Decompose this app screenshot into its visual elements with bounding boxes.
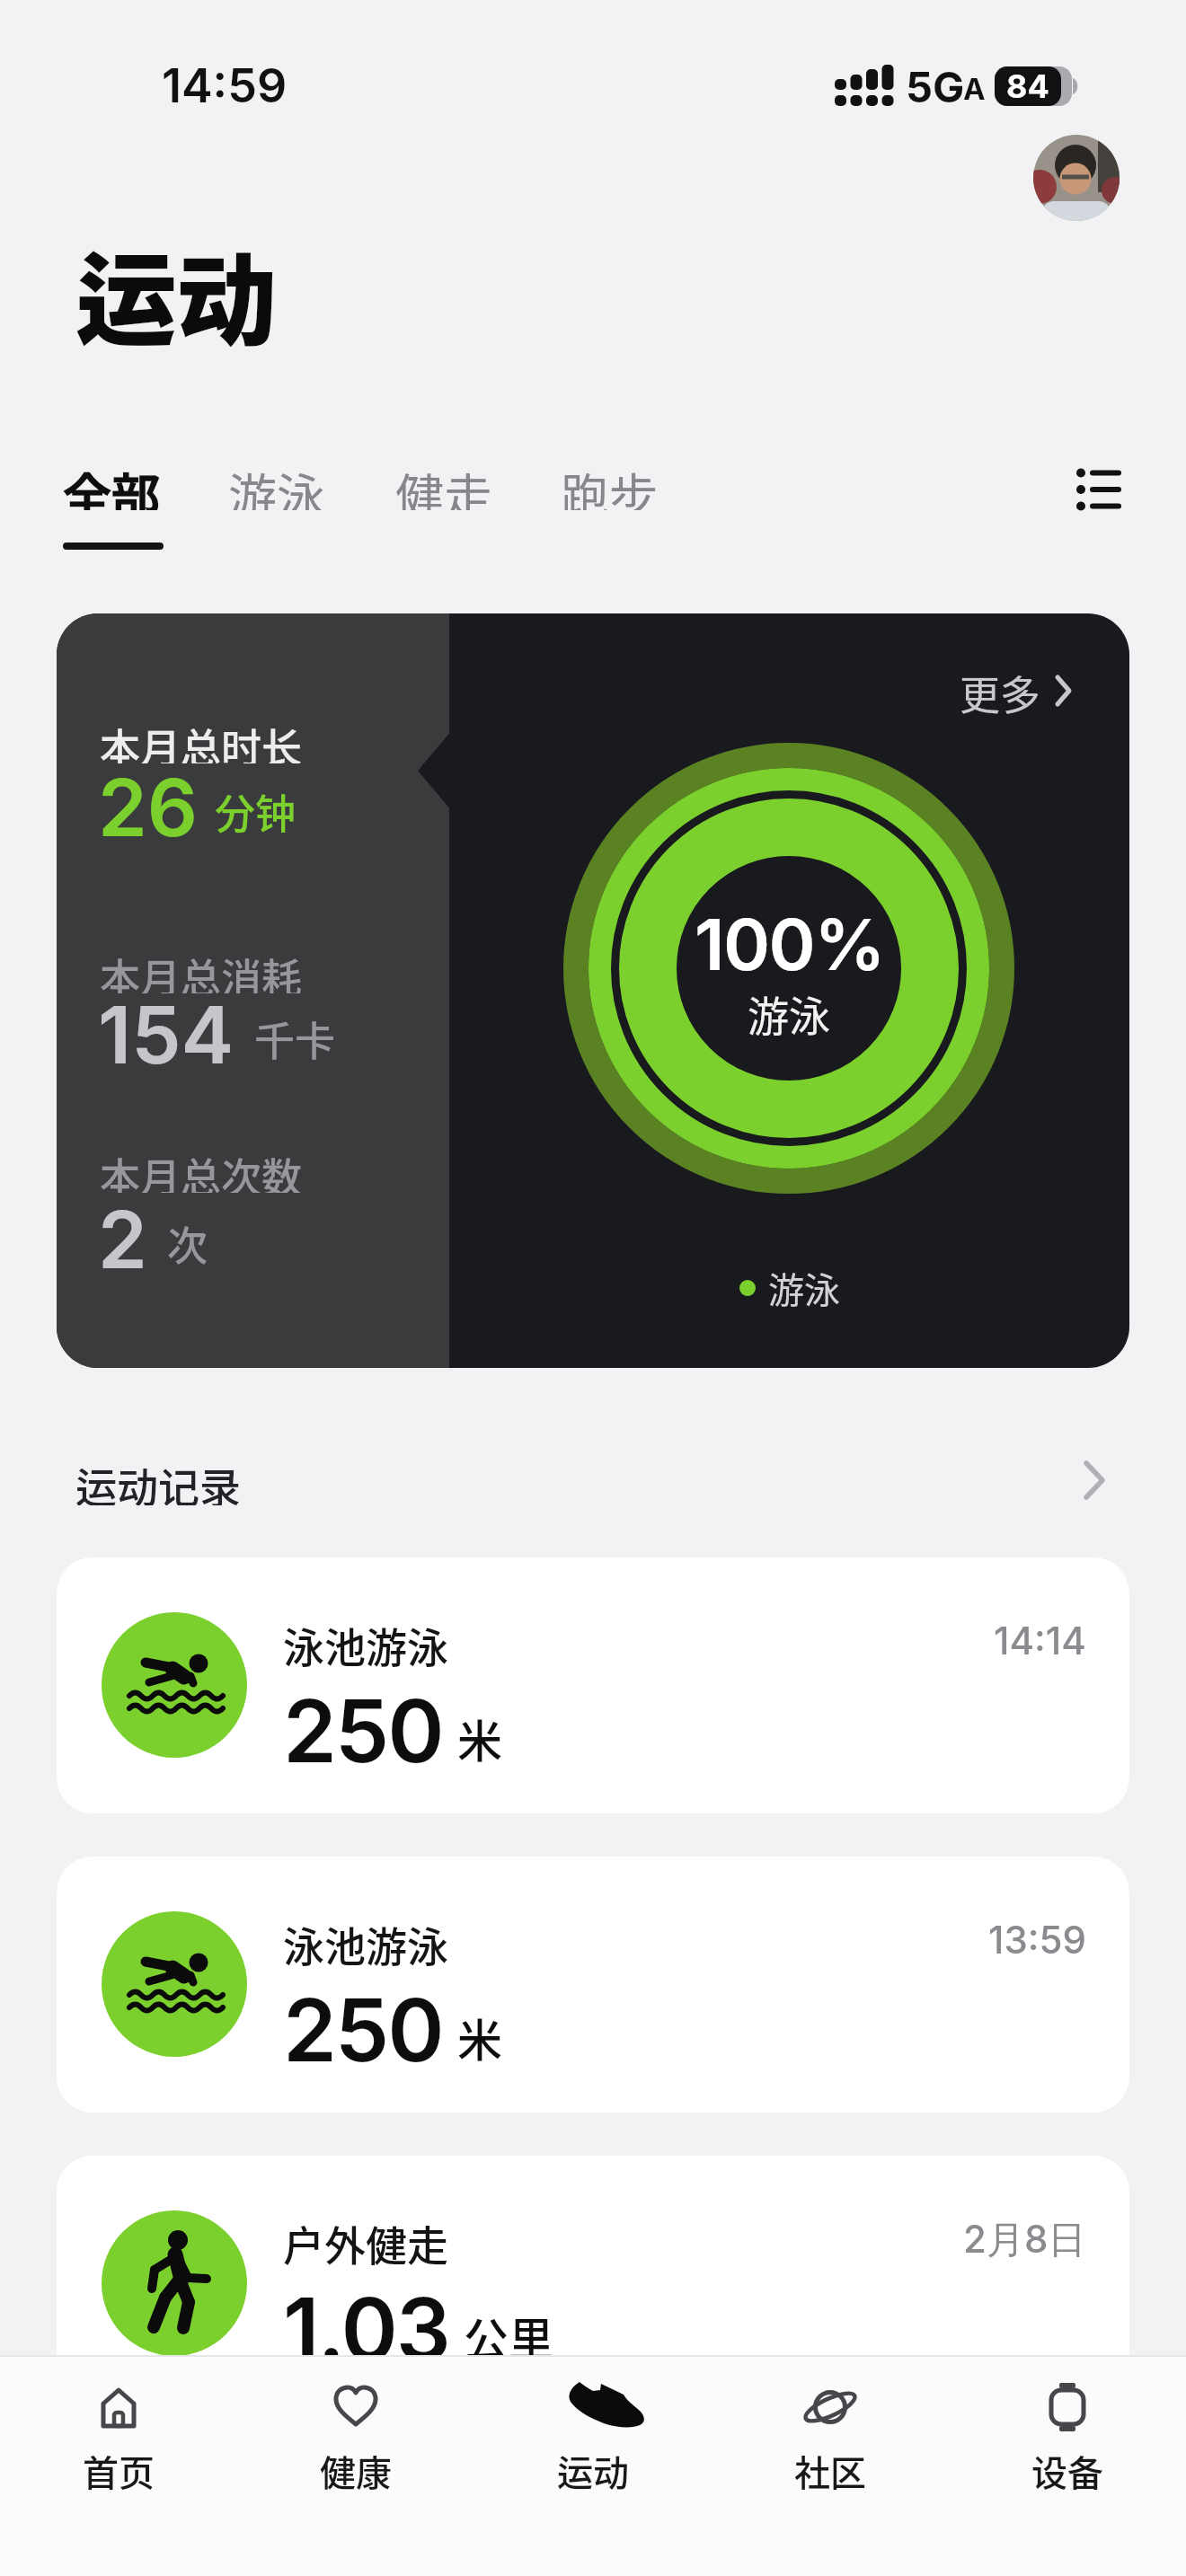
button[interactable]: 跑步 [561,458,665,510]
staticText: 泳池游泳 [283,1615,448,1667]
staticText: 分钟 [215,782,296,841]
button[interactable]: 户外健走 [57,2156,1129,2412]
staticText: 84 [1006,66,1049,106]
button[interactable]: 游泳 [228,458,332,510]
button[interactable]: 运动 [512,2362,674,2506]
button[interactable]: 泳池游泳 [57,1557,1129,1813]
staticText: 千卡 [254,1010,336,1068]
staticText: 26 [98,760,199,855]
button[interactable]: 泳池游泳 [57,1857,1129,2113]
button[interactable] [1076,469,1121,510]
staticText: 14:59 [162,57,288,111]
staticText: 本月总次数 [100,1146,303,1193]
staticText: A [963,71,986,107]
staticText: 户外健走 [283,2213,448,2265]
staticText: 全部 [63,458,160,510]
staticText: 本月总消耗 [100,947,303,993]
staticText: 运动 [75,221,277,347]
staticText: 250 [283,1978,443,2082]
staticText: 次 [167,1214,208,1273]
button[interactable] [1084,1460,1107,1500]
button[interactable]: 首页 [38,2362,199,2506]
staticText: 运动记录 [75,1455,241,1505]
staticText: 运动 [557,2445,629,2492]
staticText: 米 [457,1706,502,1770]
staticText: 健康 [320,2445,392,2492]
staticText: 游泳 [748,984,830,1043]
button[interactable]: 社区 [749,2362,911,2506]
staticText: 更多 [960,664,1041,718]
button[interactable]: 健康 [275,2362,437,2506]
staticText: 100% [695,901,884,987]
staticText: 跑步 [561,458,658,510]
staticText: 公里 [464,2304,553,2369]
staticText: 健走 [395,458,492,510]
staticText: 1.03 [283,2277,449,2381]
button[interactable]: 健走 [395,458,500,510]
staticText: 2 [98,1192,147,1287]
staticText: 14:14 [994,1618,1086,1663]
staticText: 250 [283,1679,443,1783]
button[interactable]: 设备 [987,2362,1148,2506]
button[interactable]: 更多 [865,664,1072,718]
staticText: 本月总时长 [100,717,303,763]
staticText: 154 [98,987,235,1082]
staticText: 米 [457,2005,502,2069]
staticText: 首页 [83,2445,155,2492]
staticText: 游泳 [228,458,325,510]
staticText: 5G [906,61,965,111]
staticText: 13:59 [988,1917,1086,1962]
button[interactable] [1033,135,1120,221]
button[interactable]: 本月总时长 [57,613,1129,1368]
staticText: 2月8日 [963,2216,1086,2261]
staticText: 设备 [1031,2445,1103,2492]
staticText: 泳池游泳 [283,1914,448,1966]
staticText: 游泳 [768,1262,840,1314]
staticText: 社区 [794,2445,866,2492]
button[interactable]: 全部 [63,458,167,510]
